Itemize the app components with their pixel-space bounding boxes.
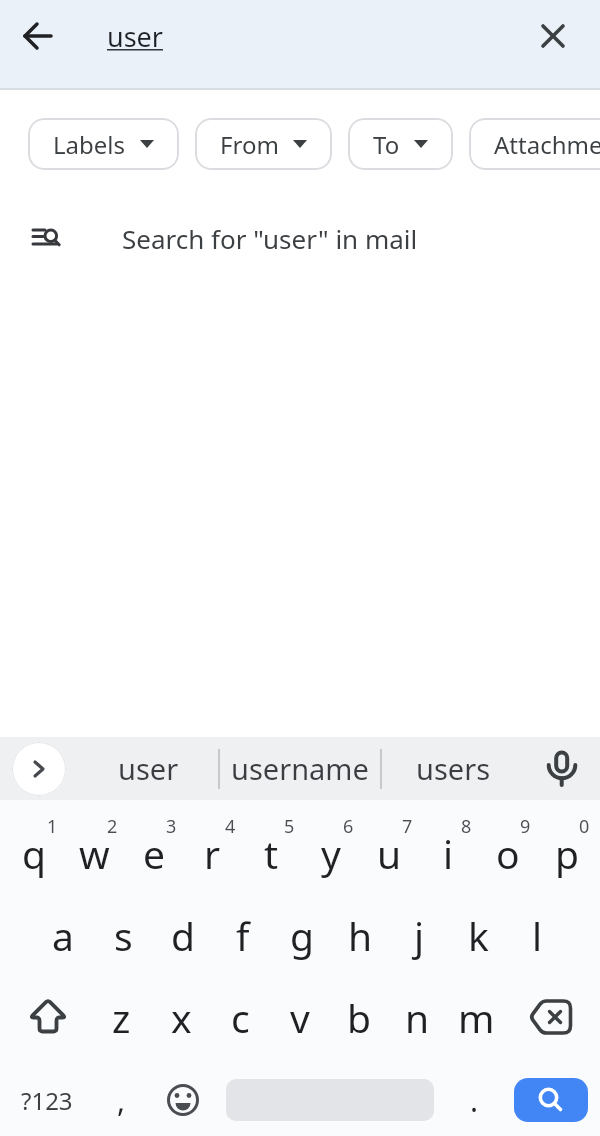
staticText: 7	[402, 814, 413, 839]
button[interactable]: o	[478, 812, 537, 894]
staticText: ,	[117, 1080, 126, 1121]
staticText: e	[143, 827, 165, 880]
staticText: a	[52, 909, 74, 962]
button[interactable]: e	[124, 812, 183, 894]
staticText: Attachment	[494, 128, 600, 161]
staticText: k	[468, 909, 489, 962]
staticText: h	[348, 909, 373, 962]
staticText: m	[458, 991, 495, 1044]
staticText: q	[22, 827, 46, 880]
button[interactable]: username	[220, 737, 380, 800]
staticText: 0	[579, 814, 590, 839]
staticText: n	[405, 991, 430, 1044]
staticText: Labels	[53, 128, 126, 161]
button[interactable]: y	[301, 812, 360, 894]
staticText: b	[347, 991, 371, 1044]
staticText: y	[321, 827, 341, 880]
staticText: 2	[107, 814, 118, 839]
staticText: d	[171, 909, 195, 962]
staticText: c	[231, 991, 250, 1044]
button[interactable]: f	[213, 894, 272, 976]
button[interactable]: h	[331, 894, 390, 976]
staticText: 4	[225, 814, 236, 839]
button[interactable]	[152, 1064, 214, 1136]
staticText: i	[443, 827, 454, 880]
button[interactable]: Attachment	[469, 118, 600, 170]
staticText: user	[118, 749, 179, 788]
staticText: o	[496, 827, 520, 880]
button[interactable]	[531, 14, 575, 58]
button[interactable]: g	[272, 894, 331, 976]
button[interactable]: p	[537, 812, 596, 894]
button[interactable]: n	[388, 976, 447, 1058]
staticText: v	[290, 991, 310, 1044]
staticText: 8	[461, 814, 472, 839]
button[interactable]: ?123	[4, 1064, 90, 1136]
staticText: j	[414, 909, 425, 962]
button[interactable]: z	[91, 976, 151, 1058]
button[interactable]: user	[78, 737, 218, 800]
staticText: p	[555, 827, 579, 880]
staticText: t	[264, 827, 279, 880]
button[interactable]: m	[447, 976, 506, 1058]
button[interactable]: a	[33, 894, 93, 976]
button[interactable]: u	[360, 812, 419, 894]
staticText: 9	[520, 814, 531, 839]
staticText: g	[290, 909, 314, 962]
staticText: To	[373, 128, 400, 161]
staticText: u	[377, 827, 402, 880]
button[interactable]: From	[195, 118, 332, 170]
staticText: user	[107, 18, 163, 55]
button[interactable]: To	[348, 118, 453, 170]
button[interactable]	[524, 737, 600, 800]
staticText: 3	[166, 814, 177, 839]
staticText: x	[171, 991, 192, 1044]
button[interactable]: q	[4, 812, 64, 894]
button[interactable]: b	[329, 976, 388, 1058]
staticText: 1	[47, 814, 58, 839]
staticText: .	[470, 1080, 479, 1121]
button[interactable]: Search for "user" in mail	[0, 212, 600, 264]
button[interactable]: users	[382, 737, 524, 800]
button[interactable]: w	[64, 812, 124, 894]
staticText: From	[220, 128, 279, 161]
button[interactable]: Labels	[28, 118, 179, 170]
button[interactable]: ,	[90, 1064, 152, 1136]
button[interactable]: v	[270, 976, 329, 1058]
staticText: f	[236, 909, 250, 962]
button[interactable]	[514, 1078, 588, 1122]
staticText: s	[114, 909, 133, 962]
button[interactable]: c	[211, 976, 270, 1058]
staticText: r	[204, 827, 221, 880]
button[interactable]: r	[183, 812, 242, 894]
button[interactable]: t	[242, 812, 301, 894]
staticText: users	[416, 749, 491, 788]
button[interactable]: l	[508, 894, 567, 976]
staticText: w	[79, 827, 110, 880]
button[interactable]	[16, 14, 60, 58]
button[interactable]: i	[419, 812, 478, 894]
staticText: ?123	[21, 1084, 73, 1117]
button[interactable]	[506, 976, 596, 1058]
button[interactable]: x	[151, 976, 211, 1058]
staticText: z	[112, 991, 131, 1044]
button[interactable]	[4, 976, 91, 1058]
staticText: 5	[284, 814, 295, 839]
staticText: 6	[343, 814, 354, 839]
staticText: username	[231, 749, 369, 788]
button[interactable]: k	[449, 894, 508, 976]
staticText: l	[532, 909, 543, 962]
button[interactable]	[12, 742, 66, 796]
button[interactable]: d	[153, 894, 213, 976]
button[interactable]: s	[93, 894, 153, 976]
button[interactable]: j	[390, 894, 449, 976]
button[interactable]: .	[434, 1064, 514, 1136]
staticText: Search for "user" in mail	[122, 221, 418, 256]
